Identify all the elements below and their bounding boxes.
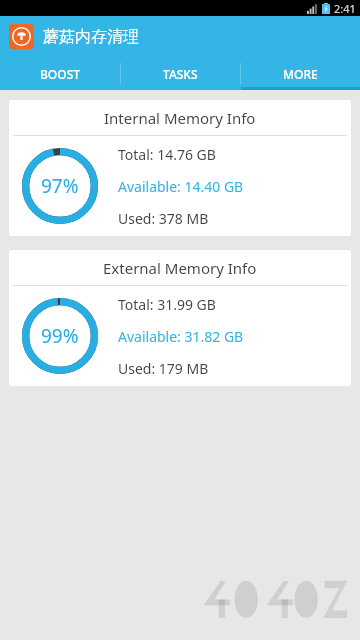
- staticText: Available: 14.40 GB: [118, 177, 244, 196]
- button[interactable]: MORE: [241, 57, 360, 90]
- staticText: Available: 31.82 GB: [118, 327, 244, 346]
- staticText: 99%: [41, 323, 79, 349]
- staticText: BOOST: [40, 66, 81, 82]
- staticText: MORE: [283, 66, 318, 82]
- staticText: Used: 378 MB: [118, 209, 209, 228]
- staticText: TASKS: [163, 66, 198, 82]
- staticText: 97%: [41, 173, 79, 199]
- staticText: External Memory Info: [103, 258, 257, 278]
- button[interactable]: TASKS: [121, 57, 240, 90]
- staticText: 2:41: [334, 1, 356, 16]
- button[interactable]: Internal Memory Info: [9, 100, 351, 236]
- staticText: Total: 31.99 GB: [118, 295, 216, 314]
- staticText: 蘑菇内存清理: [43, 27, 139, 47]
- button[interactable]: External Memory Info: [9, 250, 351, 386]
- button[interactable]: BOOST: [0, 57, 120, 90]
- staticText: Internal Memory Info: [104, 108, 256, 128]
- staticText: Total: 14.76 GB: [118, 145, 216, 164]
- staticText: Used: 179 MB: [118, 359, 209, 378]
- button[interactable]: App logo: [9, 24, 34, 49]
